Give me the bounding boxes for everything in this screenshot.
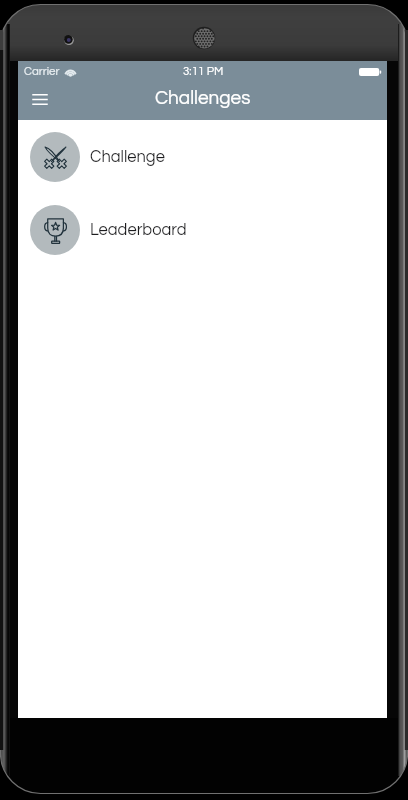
- button[interactable]: Open navigation menu: [25, 84, 55, 114]
- button[interactable]: Challenge: [18, 120, 387, 193]
- staticText: Carrier: [24, 66, 60, 78]
- staticText: Challenge: [90, 148, 165, 165]
- button[interactable]: Leaderboard: [18, 193, 387, 266]
- staticText: Leaderboard: [90, 221, 187, 238]
- staticText: Challenges: [155, 88, 251, 108]
- staticText: 3:11 PM: [183, 66, 224, 78]
